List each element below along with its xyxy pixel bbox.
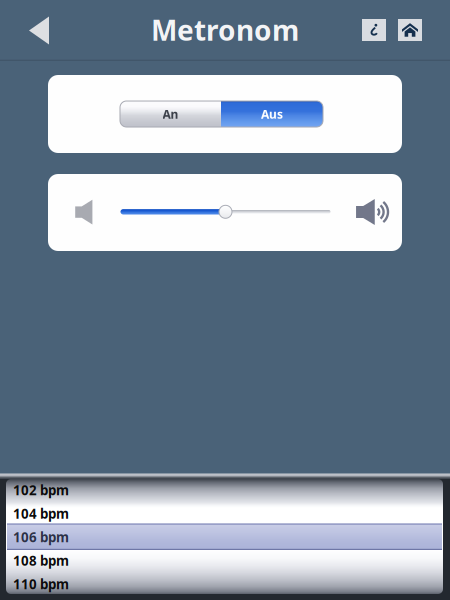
button[interactable]: Home xyxy=(398,19,422,41)
staticText: An xyxy=(162,106,178,122)
staticText: Aus xyxy=(261,106,283,122)
staticText: Metronom xyxy=(151,11,299,49)
button[interactable]: Aus xyxy=(221,101,323,127)
button[interactable]: An xyxy=(120,101,221,127)
staticText: 110 bpm xyxy=(13,575,69,593)
staticText: 104 bpm xyxy=(13,505,69,522)
button[interactable]: Back xyxy=(29,16,49,44)
staticText: 106 bpm xyxy=(13,528,69,546)
staticText: 102 bpm xyxy=(13,481,69,499)
button[interactable]: Info xyxy=(362,19,386,41)
staticText: 108 bpm xyxy=(13,552,69,569)
